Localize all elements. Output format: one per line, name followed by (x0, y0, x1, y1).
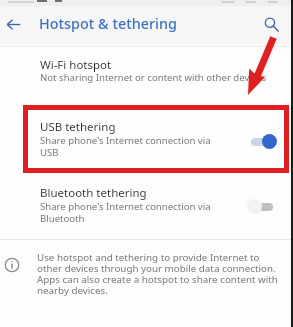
button[interactable]: USB tethering (0, 113, 293, 167)
staticText: Share phone's Internet connection via US… (40, 134, 218, 159)
staticText: USB tethering (40, 119, 116, 135)
button[interactable]: Wi-Fi hotspot (0, 45, 293, 89)
staticText: Bluetooth tethering (40, 185, 147, 201)
staticText: Wi-Fi hotspot (40, 57, 112, 73)
staticText: Not sharing Internet or content with oth… (40, 71, 267, 84)
button[interactable]: Bluetooth tethering (0, 178, 293, 232)
staticText: Share phone's Internet connection via Bl… (40, 200, 218, 225)
button[interactable]: Search (254, 7, 289, 42)
staticText: Hotspot & tethering (39, 14, 177, 34)
button[interactable]: Back (0, 7, 30, 41)
staticText: Use hotspot and tethering to provide Int… (37, 251, 278, 297)
